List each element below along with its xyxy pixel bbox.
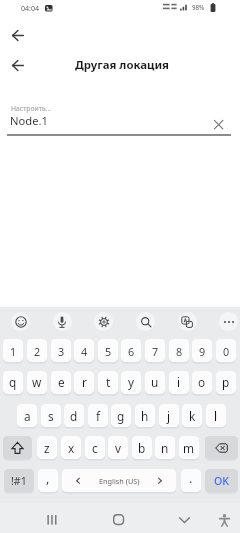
button[interactable]: r xyxy=(74,371,94,395)
button[interactable]: d xyxy=(64,404,84,428)
button[interactable]: f xyxy=(88,404,108,428)
staticText: 4 xyxy=(81,344,88,359)
button[interactable]: x xyxy=(61,436,81,460)
staticText: 7 xyxy=(152,344,159,359)
button[interactable]: s xyxy=(41,404,61,428)
button[interactable]: e xyxy=(51,371,71,395)
button[interactable]: English (US) xyxy=(62,469,176,493)
staticText: 2 xyxy=(34,344,41,359)
staticText: Node.1 xyxy=(10,113,48,128)
button[interactable]: 3 xyxy=(51,339,71,363)
staticText: a xyxy=(24,408,31,424)
button[interactable]: OK xyxy=(205,469,238,493)
staticText: 6 xyxy=(128,344,135,359)
button[interactable]: . xyxy=(181,469,201,493)
button[interactable] xyxy=(219,312,238,331)
staticText: w xyxy=(32,374,42,390)
button[interactable]: 5 xyxy=(98,339,118,363)
staticText: f xyxy=(96,408,101,424)
button[interactable]: 7 xyxy=(145,339,165,363)
button[interactable]: i xyxy=(169,371,189,395)
button[interactable]: 4 xyxy=(74,339,94,363)
button[interactable] xyxy=(209,114,229,134)
button[interactable]: 1 xyxy=(3,339,23,363)
staticText: l xyxy=(214,408,218,424)
button[interactable] xyxy=(94,312,113,331)
button[interactable]: y xyxy=(121,371,141,395)
staticText: !#1 xyxy=(11,474,27,488)
staticText: 3 xyxy=(58,344,65,359)
staticText: English (US) xyxy=(99,476,140,486)
button[interactable] xyxy=(106,508,130,530)
button[interactable]: 9 xyxy=(192,339,212,363)
button[interactable] xyxy=(40,508,64,530)
button[interactable]: a xyxy=(17,404,37,428)
staticText: h xyxy=(141,408,149,424)
button[interactable]: q xyxy=(3,371,23,395)
button[interactable] xyxy=(12,60,24,71)
button[interactable]: b xyxy=(132,436,152,460)
staticText: y xyxy=(128,374,135,390)
button[interactable] xyxy=(3,436,32,460)
staticText: 04:04 xyxy=(21,3,40,13)
button[interactable]: z xyxy=(37,436,57,460)
staticText: k xyxy=(189,408,196,424)
staticText: 1 xyxy=(10,344,17,359)
button[interactable]: 8 xyxy=(169,339,189,363)
button[interactable] xyxy=(7,100,207,136)
staticText: 9 xyxy=(199,344,206,359)
button[interactable]: n xyxy=(155,436,175,460)
button[interactable] xyxy=(173,508,197,530)
staticText: t xyxy=(106,374,111,390)
button[interactable]: k xyxy=(182,404,202,428)
staticText: b xyxy=(138,440,146,456)
button[interactable]: w xyxy=(27,371,47,395)
staticText: Другая локация xyxy=(75,57,170,73)
staticText: g xyxy=(117,408,125,424)
staticText: . xyxy=(189,470,193,487)
staticText: z xyxy=(44,440,50,456)
staticText: s xyxy=(48,408,54,424)
staticText: v xyxy=(115,440,121,456)
button[interactable]: 6 xyxy=(121,339,141,363)
button[interactable]: g xyxy=(111,404,131,428)
staticText: n xyxy=(161,440,169,456)
staticText: q xyxy=(9,374,17,390)
staticText: 5 xyxy=(105,344,112,359)
button[interactable]: m xyxy=(179,436,199,460)
staticText: c xyxy=(92,440,98,456)
button[interactable]: , xyxy=(38,469,58,493)
button[interactable] xyxy=(205,436,238,460)
staticText: 98% xyxy=(192,3,205,11)
button[interactable]: j xyxy=(159,404,179,428)
staticText: e xyxy=(58,374,65,390)
staticText: u xyxy=(151,374,159,390)
staticText: d xyxy=(70,408,78,424)
button[interactable] xyxy=(53,312,72,331)
button[interactable]: t xyxy=(98,371,118,395)
staticText: 0 xyxy=(223,344,230,359)
staticText: x xyxy=(68,440,75,456)
button[interactable]: 0 xyxy=(216,339,236,363)
button[interactable]: o xyxy=(192,371,212,395)
button[interactable] xyxy=(178,312,197,331)
button[interactable] xyxy=(12,30,24,41)
staticText: o xyxy=(198,374,206,390)
button[interactable]: !#1 xyxy=(4,469,34,493)
button[interactable]: u xyxy=(145,371,165,395)
button[interactable] xyxy=(11,312,30,331)
button[interactable] xyxy=(213,508,235,530)
button[interactable]: l xyxy=(206,404,226,428)
staticText: p xyxy=(222,374,230,390)
button[interactable]: h xyxy=(135,404,155,428)
button[interactable] xyxy=(136,312,155,331)
staticText: m xyxy=(183,440,195,456)
staticText: OK xyxy=(214,474,230,488)
staticText: 8 xyxy=(176,344,183,359)
button[interactable]: v xyxy=(108,436,128,460)
staticText: r xyxy=(82,374,87,390)
button[interactable]: p xyxy=(216,371,236,395)
button[interactable]: 2 xyxy=(27,339,47,363)
staticText: j xyxy=(167,408,171,424)
button[interactable]: c xyxy=(85,436,105,460)
